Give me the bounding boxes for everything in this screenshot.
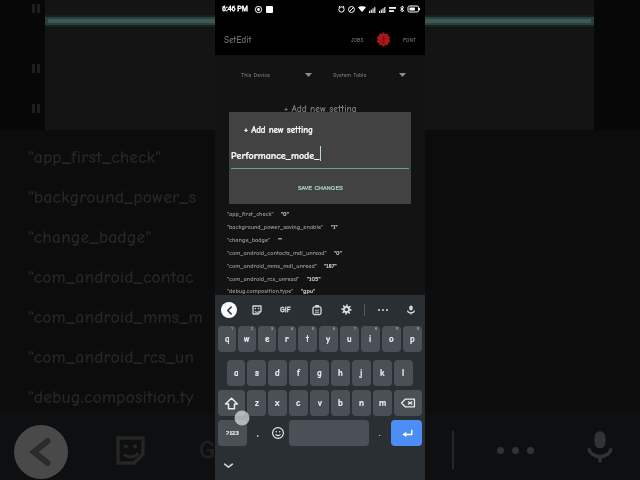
staticText: n (359, 398, 364, 408)
button[interactable]: More options (375, 306, 391, 314)
button[interactable]: y (319, 326, 338, 352)
staticText: "debug.composition.ty (28, 387, 194, 408)
staticText: , (257, 429, 259, 438)
button[interactable]: Backspace (394, 390, 422, 416)
staticText: 2 (251, 327, 254, 331)
button[interactable]: x (268, 390, 287, 416)
button[interactable]: b (331, 390, 350, 416)
button[interactable]: "change_badge" (215, 233, 425, 246)
button[interactable]: l (394, 360, 413, 386)
button[interactable]: "com_android_mms_mdl_unread" (215, 259, 425, 272)
staticText: "com_android_rcs_unread" (227, 275, 300, 282)
button[interactable]: m (373, 390, 392, 416)
staticText: Performance_mode_ (231, 150, 320, 162)
staticText: e (265, 334, 270, 344)
button[interactable]: System Table (325, 61, 409, 89)
staticText: 4 (291, 327, 294, 331)
button[interactable]: FONT (400, 33, 425, 47)
button[interactable]: ?123 (218, 420, 247, 446)
staticText: "105" (307, 275, 321, 282)
button[interactable]: Voice input (406, 305, 416, 315)
button[interactable]: u (340, 326, 359, 352)
staticText: j (360, 368, 363, 378)
staticText: q (225, 334, 230, 344)
staticText: y (326, 334, 331, 344)
button[interactable]: Back (221, 302, 237, 318)
button[interactable]: "app_first_check" (215, 207, 425, 220)
staticText: r (285, 334, 289, 344)
staticText: p (410, 334, 415, 344)
button[interactable]: Shift (218, 390, 245, 416)
staticText: h (338, 368, 343, 378)
button[interactable]: i (361, 326, 380, 352)
staticText: "gpu" (301, 287, 316, 294)
staticText: . (379, 429, 381, 438)
button[interactable]: SAVE CHANGES (229, 176, 411, 198)
button[interactable]: Stickers (252, 305, 262, 315)
button[interactable]: p (403, 326, 422, 352)
button[interactable]: v (310, 390, 329, 416)
staticText: g (317, 368, 322, 378)
button[interactable]: This Device (233, 61, 315, 89)
button[interactable]: App actions (375, 31, 392, 48)
staticText: + Add new setting (244, 125, 313, 135)
staticText: w (244, 334, 250, 344)
button[interactable]: "background_power_saving_enable" (215, 220, 425, 233)
staticText: a (234, 368, 239, 378)
button[interactable]: Clipboard (312, 305, 322, 315)
button[interactable]: s (247, 360, 266, 386)
staticText: "debug.composition.type" (227, 287, 294, 294)
button[interactable]: q (218, 326, 236, 352)
button[interactable]: "com_android_rcs_unread" (215, 272, 425, 285)
button[interactable]: w (238, 326, 256, 352)
button[interactable]: GIF (279, 305, 292, 315)
button[interactable]: k (373, 360, 392, 386)
staticText: 5 (312, 327, 315, 331)
staticText: i (369, 334, 372, 344)
staticText: System Table (333, 72, 367, 79)
staticText: 8 (375, 327, 378, 331)
button[interactable]: JOBS (348, 33, 367, 47)
staticText: ?123 (226, 429, 239, 437)
staticText: "app_first_check" (227, 210, 274, 217)
button[interactable]: h (331, 360, 350, 386)
staticText: + Add new setting (284, 103, 357, 114)
staticText: SAVE CHANGES (298, 184, 343, 191)
staticText: GIF (280, 306, 291, 314)
button[interactable]: Settings (341, 304, 352, 315)
button[interactable]: o (382, 326, 401, 352)
button[interactable]: e (258, 326, 276, 352)
button[interactable]: g (310, 360, 329, 386)
button[interactable]: t (298, 326, 317, 352)
staticText: "1" (331, 223, 338, 230)
staticText: 7 (354, 327, 357, 331)
button[interactable]: Enter (391, 420, 422, 446)
staticText: x (275, 398, 280, 408)
button[interactable]: d (268, 360, 287, 386)
button[interactable]: , (249, 420, 267, 446)
button[interactable]: c (289, 390, 308, 416)
button[interactable]: z (247, 390, 266, 416)
button[interactable]: a (227, 360, 245, 386)
staticText: "" (278, 236, 283, 243)
button[interactable]: f (289, 360, 308, 386)
button[interactable]: r (278, 326, 296, 352)
staticText: 9 (396, 327, 399, 331)
button[interactable]: "debug.composition.type" (215, 285, 425, 295)
button[interactable]: j (352, 360, 371, 386)
button[interactable]: "com_android_contacts_mdl_unread" (215, 246, 425, 259)
staticText: 6:46 PM (222, 5, 248, 13)
button[interactable]: n (352, 390, 371, 416)
staticText: "com_android_mms_mdl_unread" (227, 262, 317, 269)
button[interactable]: Emoji (269, 420, 287, 446)
staticText: o (389, 334, 394, 344)
staticText: FONT (403, 37, 416, 43)
staticText: "187" (324, 262, 337, 269)
staticText: G (199, 436, 216, 464)
button[interactable]: + Add new setting (215, 95, 425, 124)
staticText: 0 (417, 327, 420, 331)
staticText: 1 (231, 327, 234, 331)
staticText: 3 (271, 327, 274, 331)
button[interactable]: . (371, 420, 389, 446)
